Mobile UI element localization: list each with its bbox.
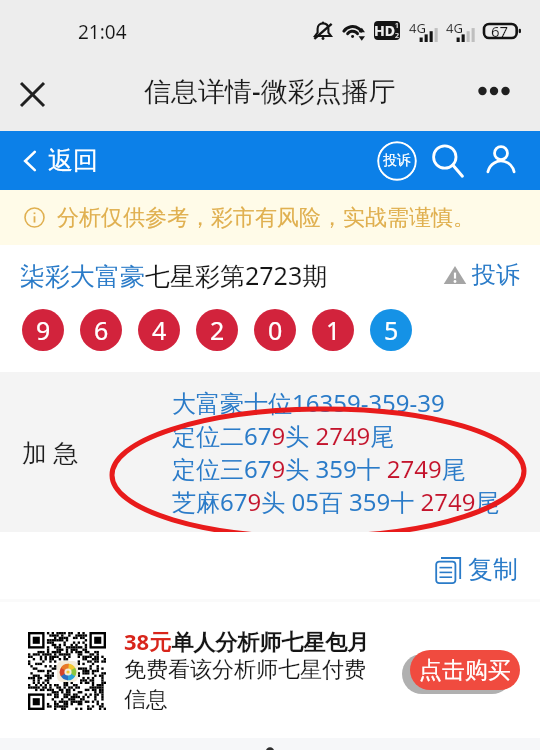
staticText: 2 — [395, 31, 400, 40]
staticText: 芝麻679头 05百 359十 2749尾 — [172, 485, 500, 518]
staticText: 21:04 — [78, 19, 127, 45]
staticText: 定位三679头 359十 2749尾 — [172, 452, 466, 485]
staticText: 4G — [409, 19, 426, 37]
staticText: 投诉 — [383, 152, 411, 170]
staticText: 点击购买 — [419, 656, 511, 685]
staticText: HD — [374, 21, 395, 40]
staticText: 1 — [326, 313, 341, 347]
staticText: 1 — [395, 21, 400, 31]
staticText: 67 — [491, 21, 509, 41]
staticText: 2 — [210, 313, 225, 347]
button[interactable]: 复制 — [435, 554, 518, 585]
staticText: 返回 — [48, 145, 98, 176]
button[interactable]: 返回 — [0, 131, 189, 190]
staticText: 9 — [36, 313, 51, 347]
staticText: 4G — [446, 19, 463, 37]
button[interactable]: 投诉 — [377, 141, 417, 181]
staticText: 复制 — [468, 554, 518, 585]
button[interactable]: More options — [470, 67, 518, 115]
staticText: 信息详情-微彩点播厅 — [144, 72, 396, 109]
staticText: 加 急 — [22, 435, 79, 469]
staticText: 分析仅供参考，彩市有风险，实战需谨慎。 — [57, 204, 475, 232]
button[interactable]: 投诉 — [443, 260, 520, 290]
staticText: 柒彩大富豪七星彩第2723期 — [20, 258, 328, 292]
button[interactable]: Close — [9, 71, 55, 117]
staticText: 投诉 — [472, 260, 520, 290]
button[interactable]: Profile — [478, 138, 524, 184]
staticText: 38元单人分析师七星包月 — [124, 626, 370, 656]
staticText: 大富豪十位16359-359-39 — [172, 386, 445, 419]
staticText: 0 — [268, 313, 283, 347]
staticText: 6 — [94, 313, 109, 347]
staticText: 5 — [384, 313, 399, 347]
button[interactable]: 点击购买 — [410, 650, 520, 690]
staticText: 定位二679头 2749尾 — [172, 419, 395, 452]
staticText: 免费看该分析师七星付费信息 — [124, 656, 374, 713]
button[interactable]: Search — [425, 138, 471, 184]
staticText: 4 — [152, 313, 167, 347]
